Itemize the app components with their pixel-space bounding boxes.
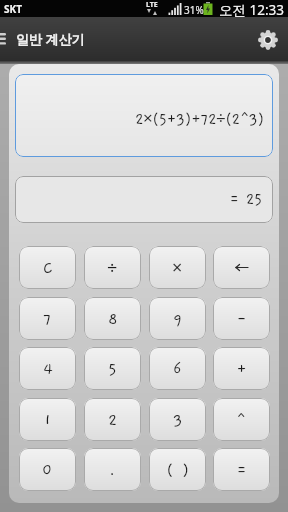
staticText: 2: [108, 411, 118, 429]
button[interactable]: 7: [19, 297, 76, 340]
button[interactable]: 3: [149, 398, 206, 441]
button[interactable]: = 25: [15, 176, 273, 223]
staticText: ^: [236, 411, 247, 429]
staticText: +: [236, 360, 248, 378]
button[interactable]: -: [213, 297, 270, 340]
button[interactable]: ÷: [84, 246, 141, 289]
button[interactable]: +: [213, 347, 270, 390]
staticText: 9: [173, 310, 183, 328]
staticText: 7: [43, 310, 52, 328]
staticText: 6: [173, 360, 182, 378]
button[interactable]: =: [213, 448, 270, 491]
staticText: =: [236, 461, 248, 479]
staticText: 오전 12:33: [219, 1, 285, 18]
staticText: C: [43, 259, 53, 277]
button[interactable]: 6: [149, 347, 206, 390]
staticText: .: [109, 461, 116, 479]
button[interactable]: 8: [84, 297, 141, 340]
button[interactable]: [252, 24, 284, 56]
staticText: -: [236, 310, 248, 328]
staticText: 2×(5+3)+72÷(2^3): [135, 106, 264, 129]
staticText: 31%: [184, 3, 204, 17]
button[interactable]: ×: [149, 246, 206, 289]
staticText: 4: [43, 360, 53, 378]
staticText: 8: [108, 310, 118, 328]
staticText: LTE: [146, 0, 158, 10]
staticText: 0: [42, 461, 53, 479]
button[interactable]: .: [84, 448, 141, 491]
button[interactable]: C: [19, 246, 76, 289]
button[interactable]: 2×(5+3)+72÷(2^3): [15, 74, 273, 157]
button[interactable]: 4: [19, 347, 76, 390]
button[interactable]: 9: [149, 297, 206, 340]
button[interactable]: [213, 246, 270, 289]
button[interactable]: ( ): [149, 448, 206, 491]
staticText: 1: [44, 411, 52, 429]
staticText: 3: [173, 411, 183, 429]
staticText: = 25: [229, 191, 262, 208]
staticText: ×: [172, 255, 183, 280]
staticText: 5: [108, 360, 117, 378]
button[interactable]: 2: [84, 398, 141, 441]
staticText: ( ): [166, 461, 190, 479]
staticText: SKT: [4, 2, 22, 16]
button[interactable]: ^: [213, 398, 270, 441]
staticText: ÷: [107, 255, 118, 280]
button[interactable]: 1: [19, 398, 76, 441]
button[interactable]: 0: [19, 448, 76, 491]
staticText: 일반 계산기: [16, 30, 85, 48]
button[interactable]: 5: [84, 347, 141, 390]
